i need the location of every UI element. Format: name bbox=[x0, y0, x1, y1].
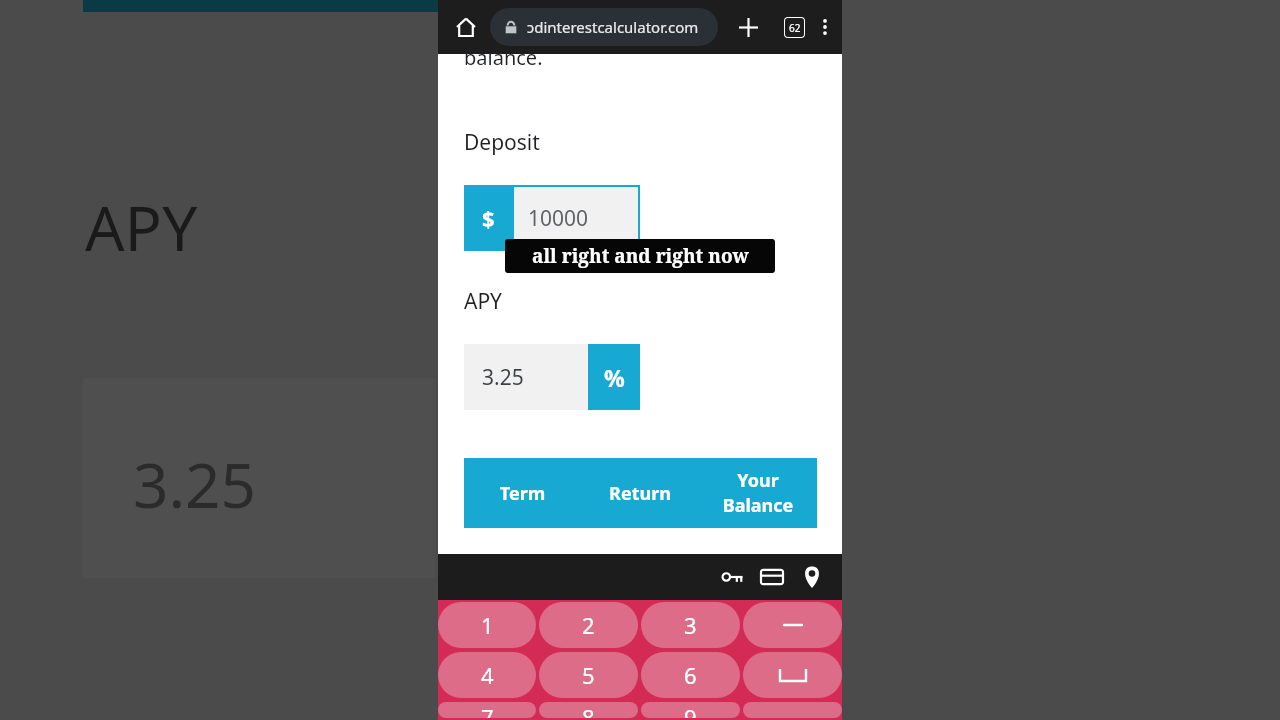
staticText: % bbox=[604, 362, 625, 393]
button[interactable]: Space bbox=[743, 652, 842, 698]
staticText: 9 bbox=[684, 702, 697, 718]
button[interactable]: More options bbox=[816, 7, 834, 47]
staticText: APY bbox=[464, 287, 503, 316]
staticText: APY bbox=[85, 185, 198, 269]
staticText: 62 bbox=[789, 21, 801, 35]
staticText: Deposit bbox=[464, 128, 540, 157]
button[interactable]: 10000 bbox=[514, 187, 638, 249]
button[interactable]: 2 bbox=[539, 602, 638, 648]
button[interactable]: 1 bbox=[438, 602, 536, 648]
staticText: ɔdinterestcalculator.com bbox=[527, 17, 699, 37]
staticText: 4 bbox=[481, 660, 494, 690]
button[interactable]: New tab bbox=[728, 7, 768, 47]
staticText: 3.25 bbox=[133, 442, 257, 526]
staticText: $ bbox=[482, 203, 495, 233]
button[interactable]: Key bbox=[743, 702, 842, 718]
staticText: all right and right now bbox=[532, 243, 749, 269]
button[interactable]: Minus bbox=[743, 602, 842, 648]
staticText: 5 bbox=[582, 660, 595, 690]
button[interactable]: ɔdinterestcalculator.com bbox=[490, 8, 718, 46]
button[interactable]: Payment methods bbox=[752, 557, 792, 597]
button[interactable]: 3.25 bbox=[464, 344, 588, 410]
staticText: 8 bbox=[582, 702, 595, 718]
staticText: 6 bbox=[684, 660, 697, 690]
staticText: 2 bbox=[582, 610, 595, 640]
staticText: 1 bbox=[481, 610, 494, 640]
button[interactable]: 7 bbox=[438, 702, 536, 718]
button[interactable]: 3 bbox=[641, 602, 740, 648]
button[interactable]: Dollars bbox=[464, 185, 512, 251]
staticText: balance. bbox=[464, 44, 543, 66]
staticText: 3.25 bbox=[482, 363, 524, 392]
button[interactable]: 6 bbox=[641, 652, 740, 698]
staticText: 10000 bbox=[528, 204, 589, 233]
button[interactable]: 9 bbox=[641, 702, 740, 718]
staticText: 3 bbox=[684, 610, 697, 640]
staticText: 7 bbox=[481, 702, 494, 718]
button[interactable]: 8 bbox=[539, 702, 638, 718]
button[interactable]: Addresses bbox=[792, 557, 832, 597]
staticText: Return bbox=[581, 481, 699, 506]
button[interactable]: Home bbox=[446, 7, 486, 47]
button[interactable]: Percent bbox=[588, 344, 640, 410]
staticText: Your Balance bbox=[709, 468, 807, 518]
button[interactable]: Tabs: 62 bbox=[774, 7, 814, 47]
button[interactable]: Passwords bbox=[712, 557, 752, 597]
staticText: Term bbox=[464, 481, 581, 506]
button[interactable]: 4 bbox=[438, 652, 536, 698]
button[interactable]: 5 bbox=[539, 652, 638, 698]
